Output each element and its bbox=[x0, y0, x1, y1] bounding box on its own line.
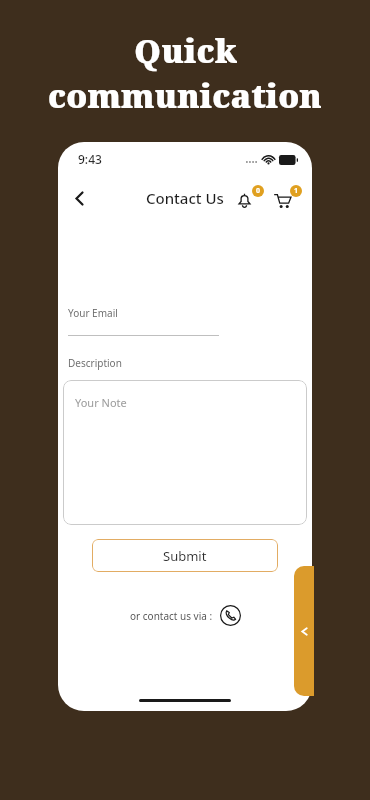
staticText: 0 bbox=[256, 186, 261, 196]
button[interactable]: Call us bbox=[220, 605, 241, 626]
button[interactable]: Back bbox=[62, 181, 96, 215]
button[interactable]: Cart bbox=[274, 183, 304, 213]
button[interactable]: Notifications bbox=[236, 183, 266, 213]
staticText: 1 bbox=[294, 186, 299, 196]
button[interactable]: Your Note bbox=[63, 380, 307, 525]
staticText: Quick bbox=[134, 28, 237, 73]
staticText: communication bbox=[48, 73, 322, 118]
staticText: Your Note bbox=[75, 395, 127, 410]
button[interactable]: Open panel bbox=[294, 566, 314, 696]
staticText: Description bbox=[68, 356, 122, 370]
button[interactable]: Submit bbox=[92, 539, 278, 572]
staticText: Submit bbox=[163, 547, 207, 565]
staticText: 9:43 bbox=[78, 151, 102, 167]
staticText: Contact Us bbox=[146, 188, 224, 208]
staticText: Your Email bbox=[68, 306, 118, 320]
staticText: or contact us via : bbox=[130, 609, 213, 623]
